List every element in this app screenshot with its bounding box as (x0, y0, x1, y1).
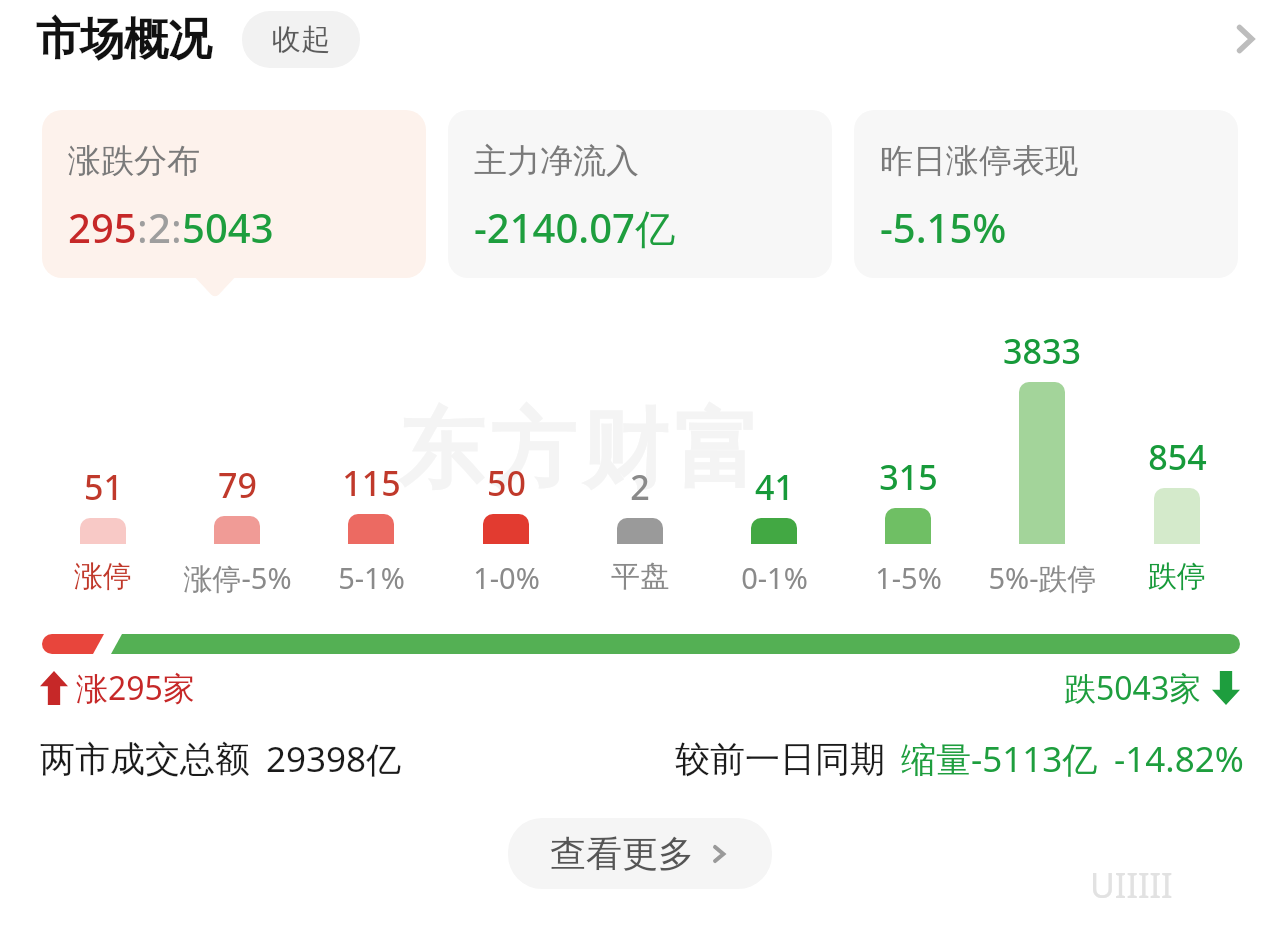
staticText: 昨日涨停表现 (880, 140, 1078, 182)
button[interactable]: 涨跌分布 (42, 110, 426, 278)
staticText: : (137, 200, 148, 254)
staticText: 跌停 (1148, 558, 1206, 595)
staticText: 涨停-5% (183, 558, 292, 598)
staticText: 315 (879, 454, 938, 500)
staticText: 5-1% (338, 558, 405, 597)
staticText: 涨295家 (76, 666, 195, 710)
staticText: 较前一日同期 (675, 737, 885, 781)
staticText: 854 (1148, 434, 1207, 480)
staticText: 主力净流入 (474, 140, 639, 182)
staticText: 涨跌分布 (68, 140, 200, 182)
staticText: 收起 (272, 21, 330, 58)
staticText: 涨停 (74, 558, 132, 595)
staticText: 2 (630, 464, 650, 510)
staticText: 查看更多 (550, 831, 694, 876)
staticText: 115 (342, 460, 401, 506)
staticText: 1-0% (473, 558, 540, 597)
staticText: -5.15% (880, 200, 1007, 254)
button[interactable]: 昨日涨停表现 (854, 110, 1238, 278)
staticText: 市场概况 (36, 12, 212, 67)
button[interactable]: 主力净流入 (448, 110, 832, 278)
staticText: UIIIII (1090, 862, 1173, 908)
staticText: 0-1% (741, 558, 808, 597)
staticText: 295 (68, 200, 137, 254)
staticText: 29398亿 (266, 735, 402, 783)
staticText: 跌5043家 (1064, 666, 1202, 710)
button[interactable]: 查看更多 (508, 818, 772, 889)
staticText: 5043 (182, 200, 274, 254)
staticText: 平盘 (611, 558, 669, 595)
button[interactable]: 收起 (242, 11, 360, 68)
staticText: 50 (487, 460, 526, 506)
staticText: 5%-跌停 (988, 558, 1097, 598)
staticText: -2140.07亿 (474, 200, 675, 255)
staticText: 3833 (1003, 328, 1081, 374)
staticText: 1-5% (875, 558, 942, 597)
staticText: 东方财富 (395, 396, 763, 504)
staticText: 2 (148, 200, 171, 254)
staticText: -14.82% (1114, 735, 1244, 783)
button[interactable]: 展开更多 (1210, 4, 1280, 74)
staticText: 41 (755, 464, 794, 510)
staticText: 51 (84, 464, 123, 510)
staticText: 缩量-5113亿 (901, 735, 1098, 783)
staticText: 两市成交总额 (40, 737, 250, 781)
staticText: 79 (218, 462, 257, 508)
staticText: : (171, 200, 182, 254)
